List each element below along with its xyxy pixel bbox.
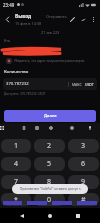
button[interactable]: * xyxy=(1,193,31,206)
button[interactable]: Suggestion xyxy=(3,200,22,205)
button[interactable]: 9 xyxy=(68,175,99,189)
staticText: 2 xyxy=(47,141,52,151)
staticText: Кто xyxy=(4,38,10,43)
button[interactable]: Back xyxy=(1,13,14,26)
button[interactable]: 8 xyxy=(34,175,65,189)
staticText: * xyxy=(14,195,18,205)
button[interactable]: Suggestion xyxy=(27,200,47,205)
staticText: 4 xyxy=(14,159,19,169)
staticText: МАКС xyxy=(72,82,82,87)
staticText: Убедитесь, что адрес получателя указан в… xyxy=(14,59,85,63)
staticText: 21 мв 223 xyxy=(41,30,60,35)
button[interactable]: 0 xyxy=(34,193,65,206)
staticText: 9 xyxy=(81,177,86,187)
staticText: 15 фев в 14:38 xyxy=(15,21,42,26)
staticText: # xyxy=(81,195,86,205)
button[interactable]: Voice input xyxy=(85,123,94,132)
button[interactable]: 2 xyxy=(34,139,65,153)
button[interactable]: More options xyxy=(89,15,98,24)
staticText: 370.787232 xyxy=(6,81,29,87)
button[interactable]: Suggestion xyxy=(77,200,97,205)
button[interactable]: Suggestion xyxy=(52,200,72,205)
button[interactable]: Далее xyxy=(4,110,96,122)
staticText: Доступно: 370.787232 USDT xyxy=(4,92,46,96)
staticText: 0 xyxy=(47,195,52,205)
button[interactable]: Home xyxy=(44,210,56,222)
button[interactable]: Clipboard xyxy=(19,123,28,132)
button[interactable]: Edit xyxy=(67,14,77,24)
button[interactable]: Share xyxy=(78,14,88,24)
staticText: Отправить xyxy=(46,14,67,19)
staticText: Количество xyxy=(4,69,29,75)
button[interactable]: Sticker xyxy=(32,123,41,132)
button[interactable]: # xyxy=(68,193,99,206)
staticText: USDT xyxy=(85,82,94,87)
button[interactable]: Recent apps xyxy=(72,210,84,222)
staticText: 5 xyxy=(47,159,52,169)
staticText: 7 xyxy=(14,177,19,187)
staticText: 3 xyxy=(81,141,86,151)
button[interactable]: Keyboard layout xyxy=(0,123,6,132)
staticText: 8 xyxy=(47,177,52,187)
button[interactable]: Settings xyxy=(46,123,55,132)
staticText: 6 xyxy=(81,159,86,169)
button[interactable]: 4 xyxy=(1,157,31,171)
staticText: Приложение "SafePal" оставить доступ к xyxy=(20,187,81,191)
staticText: Далее xyxy=(44,113,57,119)
button[interactable]: Back xyxy=(16,210,28,222)
staticText: 23:49 xyxy=(3,2,15,8)
staticText: 1 xyxy=(14,141,19,151)
button[interactable]: Emoji xyxy=(67,123,76,132)
button[interactable]: 370.787232 xyxy=(3,78,97,90)
staticText: Вывод xyxy=(15,13,32,20)
button[interactable]: 5 xyxy=(34,157,65,171)
button[interactable]: 3 xyxy=(68,139,99,153)
button[interactable]: 7 xyxy=(1,175,31,189)
button[interactable]: Приложение "SafePal" оставить доступ к xyxy=(12,184,88,194)
button[interactable]: 1 xyxy=(1,139,31,153)
button[interactable]: 6 xyxy=(68,157,99,171)
